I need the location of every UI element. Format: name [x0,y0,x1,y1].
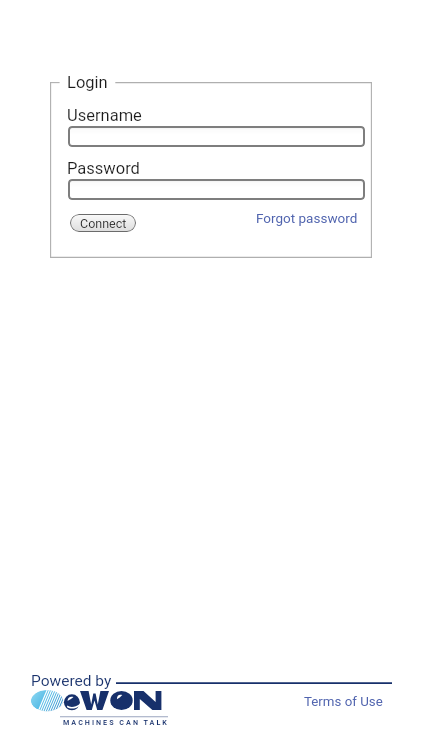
staticText: Forgot password [256,210,358,226]
staticText: Terms of Use [304,694,383,710]
staticText: Connect [80,216,127,231]
button[interactable]: Forgot password [256,210,358,226]
button[interactable]: Connect [70,214,136,232]
staticText: Login [67,73,108,92]
staticText: Powered by [31,672,112,690]
staticText: Password [67,159,140,178]
button[interactable]: Username input [68,126,365,147]
button[interactable]: Password input [68,179,365,200]
staticText: MACHINES CAN TALK [63,718,169,726]
staticText: Username [67,106,142,125]
button[interactable]: Terms of Use [304,694,383,710]
